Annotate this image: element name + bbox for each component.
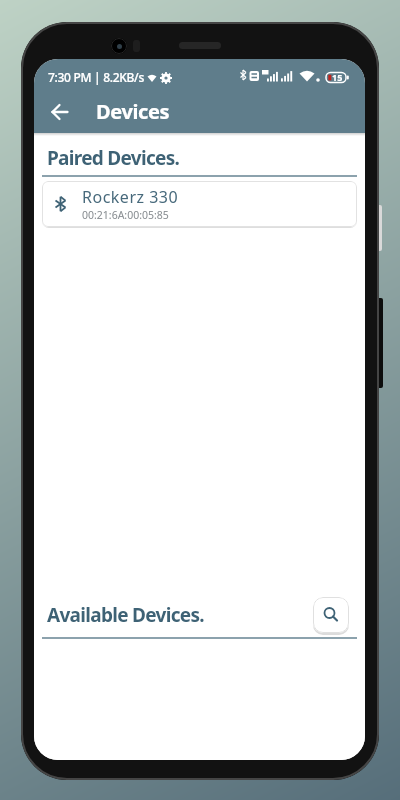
staticText: Rockerz 330 — [82, 186, 179, 208]
staticText: 00:21:6A:00:05:85 — [82, 208, 169, 222]
staticText: Devices — [96, 98, 170, 125]
staticText: Paired Devices. — [47, 145, 180, 171]
staticText: 7:30 PM | 8.2KB/s — [48, 69, 144, 85]
staticText: 15 — [332, 71, 343, 83]
button[interactable] — [313, 597, 349, 633]
button[interactable]: Rockerz 330 — [42, 181, 357, 227]
button[interactable] — [50, 102, 70, 122]
staticText: Available Devices. — [47, 602, 204, 628]
